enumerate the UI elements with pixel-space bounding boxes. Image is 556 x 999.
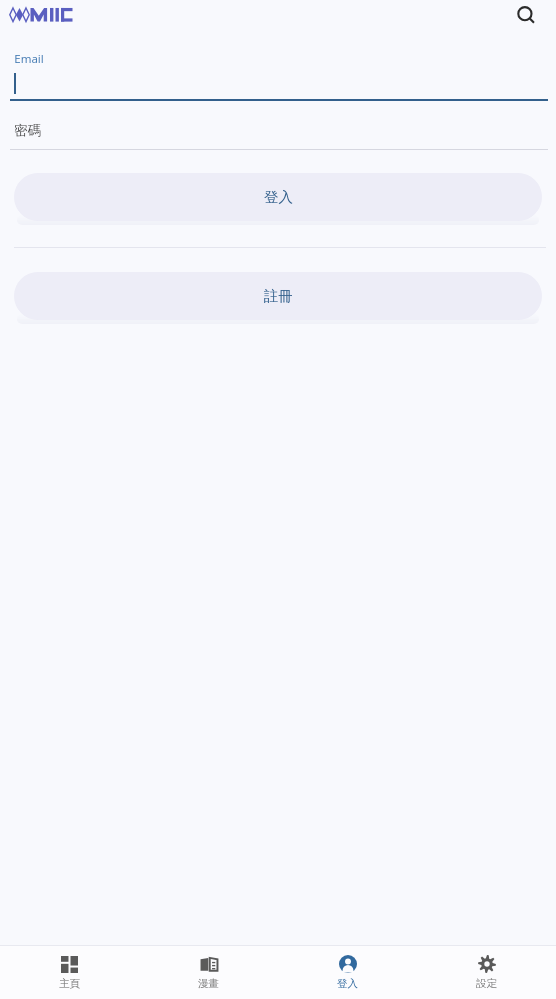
button[interactable]: 註冊 bbox=[14, 272, 542, 320]
staticText: 設定 bbox=[476, 977, 497, 990]
button[interactable]: 漫畫 bbox=[139, 946, 278, 999]
button[interactable] bbox=[0, 71, 556, 99]
staticText: 漫畫 bbox=[198, 977, 219, 990]
staticText: 註冊 bbox=[264, 287, 293, 305]
button[interactable]: 登入 bbox=[278, 946, 417, 999]
staticText: 登入 bbox=[337, 977, 358, 990]
button[interactable]: 登入 bbox=[14, 173, 542, 221]
staticText: 主頁 bbox=[59, 977, 80, 990]
button[interactable]: 主頁 bbox=[0, 946, 139, 999]
staticText: Email bbox=[14, 51, 44, 67]
button[interactable]: MIIC home bbox=[9, 4, 89, 26]
staticText: 登入 bbox=[264, 188, 293, 206]
button[interactable]: Search bbox=[508, 0, 544, 30]
staticText: 密碼 bbox=[14, 122, 41, 139]
button[interactable]: 密碼 bbox=[0, 116, 556, 144]
button[interactable]: 設定 bbox=[417, 946, 556, 999]
